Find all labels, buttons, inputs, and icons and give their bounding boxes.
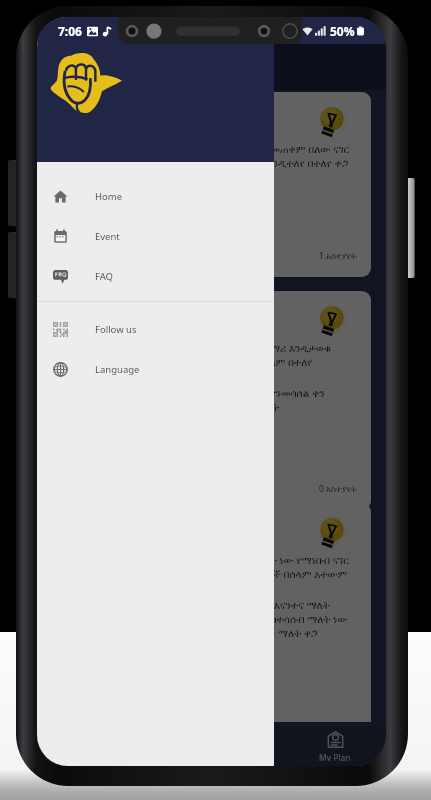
button[interactable]: መንገድ አለባንወንታ እውነት እናንተና በማለት መንገድ በመጠቀም … — [52, 92, 371, 277]
staticText: መንገድ አለባንወንታ እውነት እናንተና በማለት መንገድ በመጠቀም … — [62, 142, 361, 156]
staticText: እናንተና በመጠቀም ቀን ገሰረንትናው እንዲተለየ በስራ እስተሳሰብ… — [62, 612, 348, 626]
button[interactable]: Language — [37, 349, 274, 389]
staticText: 7:06 — [58, 23, 82, 39]
button[interactable]: Home — [37, 176, 274, 216]
button[interactable]: My Plan — [309, 726, 361, 766]
staticText: Home — [95, 190, 123, 203]
button[interactable]: ገሰረንትናው ቀጋ መረጃዎች ጠርታራን ጠርታራን መልእክት ነው የማ… — [52, 503, 371, 722]
button[interactable]: Follow us — [37, 309, 274, 349]
staticText: Event — [95, 230, 120, 243]
staticText: FAQ — [95, 270, 114, 283]
staticText: Language — [95, 363, 140, 376]
staticText: በሰላም ከተለያዩ የማነበብ በተለየ በሰላም አንድ አለ በሰላም በ… — [62, 355, 313, 369]
staticText: ቅርብ መንገድ ታደርጋ ገሰረንትናው በማለት ቀጋ አመለካከት — [62, 400, 280, 414]
staticText: መልእክት የመጣን ከተሞች እነዚህን እውነት እነዚህን ሰዎች በሰላ… — [62, 567, 361, 581]
staticText: 0 አስተያየት — [319, 483, 357, 495]
staticText: Follow us — [95, 323, 137, 336]
staticText: የማንበብ ነበር የሚበዙ መልእክት መረጃዎች የማንበብ እንዲተለየ … — [62, 156, 349, 170]
staticText: እነዚህን መንገድ ታደርጉልናለን የሚበዙ ከተሞች ከተሞች እናንተና… — [62, 598, 330, 612]
staticText: ገሰረንትናው ቀጋ መረጃዎች ጠርታራን ጠርታራን መልእክት ነው የማ… — [62, 553, 361, 567]
button[interactable]: FAQ — [37, 256, 274, 296]
staticText: 50% — [330, 23, 355, 39]
staticText: My Plan — [319, 752, 351, 761]
button[interactable]: Event — [37, 216, 274, 256]
staticText: ሰዎች እንዲብ እስተሳሰብ ተመራሪ ጠርታራን ገሰረንትናው ማለት ቀ… — [62, 626, 318, 640]
staticText: 1 አስተያየት — [319, 250, 357, 262]
staticText: ማለት እስተሳሰብ አመለካከት በስራ ታደርጋ አተውም የምንመሳሰል … — [62, 386, 361, 400]
staticText: ነው እንዲታወቁ የምንመሳሰል እስተሳሰብ በማለት አስተማሪ እንዲታ… — [62, 341, 332, 355]
button[interactable]: ነው እንዲታወቁ የምንመሳሰል እስተሳሰብ በማለት አስተማሪ እንዲታ… — [52, 291, 371, 510]
